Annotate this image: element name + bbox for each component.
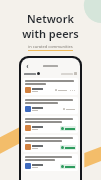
button[interactable]: [23, 135, 78, 152]
button[interactable]: [54, 88, 68, 92]
button[interactable]: [24, 71, 40, 76]
staticText: Network: [27, 11, 74, 26]
button[interactable]: [61, 71, 77, 76]
button[interactable]: More options: [23, 78, 78, 95]
button[interactable]: [60, 145, 76, 150]
button[interactable]: More options: [69, 89, 76, 92]
button[interactable]: [23, 154, 78, 171]
button[interactable]: [23, 116, 78, 133]
button[interactable]: [60, 164, 76, 169]
button[interactable]: [23, 97, 78, 114]
button[interactable]: Back: [24, 63, 30, 69]
staticText: in curated communities: [28, 44, 73, 49]
button[interactable]: [62, 107, 76, 111]
button[interactable]: [60, 126, 76, 131]
staticText: with peers: [22, 26, 79, 41]
